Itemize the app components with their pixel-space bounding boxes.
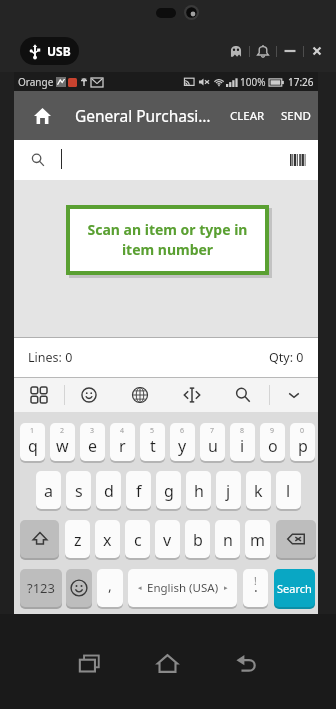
staticText: SEND: [281, 108, 311, 124]
button[interactable]: Notifications: [254, 42, 272, 60]
button[interactable]: 8: [230, 423, 255, 461]
button[interactable]: Search: [274, 569, 315, 607]
button[interactable]: USB: [20, 37, 79, 65]
button[interactable]: x: [95, 520, 120, 558]
staticText: y: [178, 435, 187, 457]
button[interactable]: 7: [200, 423, 225, 461]
staticText: g: [164, 480, 174, 502]
button[interactable]: a: [36, 471, 61, 509]
staticText: t: [150, 435, 156, 457]
staticText: Qty: 0: [269, 349, 304, 366]
staticText: c: [134, 529, 142, 551]
staticText: 9: [270, 426, 275, 436]
button[interactable]: Back: [222, 639, 270, 687]
staticText: 8: [240, 426, 245, 436]
staticText: f: [136, 480, 142, 502]
button[interactable]: Shift: [20, 520, 59, 558]
button[interactable]: Minimize: [281, 42, 299, 60]
button[interactable]: 6: [170, 423, 195, 461]
staticText: English (USA): [147, 580, 219, 596]
staticText: CLEAR: [230, 108, 265, 124]
button[interactable]: Search: [232, 378, 254, 412]
staticText: u: [208, 435, 218, 457]
button[interactable]: ,: [97, 569, 123, 607]
staticText: .: [254, 577, 258, 596]
button[interactable]: f: [126, 471, 151, 509]
staticText: v: [163, 529, 172, 551]
staticText: n: [223, 529, 233, 551]
staticText: h: [194, 480, 204, 502]
button[interactable]: 0: [290, 423, 315, 461]
staticText: 5: [150, 426, 155, 436]
staticText: p: [298, 435, 308, 457]
button[interactable]: b: [185, 520, 210, 558]
staticText: ◂: [138, 584, 142, 592]
button[interactable]: CLEAR: [224, 95, 271, 137]
staticText: a: [44, 480, 53, 502]
staticText: x: [103, 529, 112, 551]
staticText: e: [88, 435, 98, 457]
staticText: m: [250, 529, 265, 551]
button[interactable]: Home: [22, 91, 66, 140]
button[interactable]: s: [66, 471, 91, 509]
staticText: 7: [210, 426, 215, 436]
button[interactable]: Home: [143, 639, 191, 687]
staticText: 6: [180, 426, 185, 436]
button[interactable]: v: [155, 520, 180, 558]
button[interactable]: Backspace: [276, 520, 316, 558]
staticText: ▸: [224, 584, 228, 592]
staticText: USB: [47, 43, 71, 59]
button[interactable]: Clipboard: [28, 378, 50, 412]
button[interactable]: Hide keyboard: [283, 378, 305, 412]
button[interactable]: 9: [260, 423, 285, 461]
button[interactable]: Scan barcode: [283, 147, 313, 173]
button[interactable]: Language: [129, 378, 151, 412]
staticText: o: [268, 435, 278, 457]
button[interactable]: Emoji: [66, 569, 92, 607]
staticText: Scan an item or type in item number: [75, 220, 260, 260]
button[interactable]: 4: [110, 423, 135, 461]
button[interactable]: g: [156, 471, 181, 509]
button[interactable]: ◂: [128, 569, 237, 607]
staticText: i: [240, 435, 245, 457]
button[interactable]: z: [65, 520, 90, 558]
button[interactable]: c: [125, 520, 150, 558]
button[interactable]: 5: [140, 423, 165, 461]
button[interactable]: SEND: [275, 95, 317, 137]
button[interactable]: d: [96, 471, 121, 509]
button[interactable]: Text editing: [181, 378, 203, 412]
staticText: k: [254, 480, 263, 502]
staticText: Search: [277, 581, 312, 596]
staticText: Orange: [18, 75, 54, 89]
button[interactable]: h: [186, 471, 211, 509]
button[interactable]: j: [216, 471, 241, 509]
button[interactable]: Emoji: [78, 378, 100, 412]
staticText: l: [286, 480, 291, 502]
staticText: s: [75, 480, 83, 502]
staticText: q: [28, 435, 38, 457]
button[interactable]: !: [243, 569, 268, 607]
button[interactable]: Recent apps: [65, 639, 113, 687]
button[interactable]: 2: [50, 423, 75, 461]
staticText: d: [104, 480, 114, 502]
button[interactable]: n: [215, 520, 240, 558]
button[interactable]: 1: [20, 423, 45, 461]
button[interactable]: m: [245, 520, 270, 558]
staticText: j: [226, 480, 231, 502]
staticText: Lines: 0: [28, 349, 73, 366]
staticText: ,: [108, 576, 112, 595]
staticText: r: [119, 435, 126, 457]
button[interactable]: l: [276, 471, 301, 509]
staticText: 17:26: [288, 75, 314, 89]
staticText: ?123: [27, 579, 55, 597]
staticText: 2: [60, 426, 65, 436]
button[interactable]: Assistant: [227, 42, 245, 60]
staticText: z: [74, 529, 82, 551]
button[interactable]: Close: [308, 42, 326, 60]
button[interactable]: 3: [80, 423, 105, 461]
button[interactable]: Search: [23, 140, 53, 180]
staticText: b: [193, 529, 203, 551]
staticText: w: [56, 435, 69, 457]
button[interactable]: ?123: [20, 569, 62, 607]
button[interactable]: k: [246, 471, 271, 509]
